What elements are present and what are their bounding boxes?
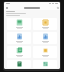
button[interactable]	[33, 32, 57, 44]
button[interactable]	[7, 46, 31, 58]
button[interactable]	[7, 32, 31, 44]
button[interactable]	[33, 18, 57, 30]
button[interactable]	[33, 60, 57, 68]
button[interactable]	[24, 7, 40, 9]
button[interactable]: Search	[55, 5, 60, 10]
button[interactable]	[7, 60, 31, 68]
button[interactable]	[33, 46, 57, 58]
button[interactable]	[7, 18, 31, 30]
button[interactable]: Navigation menu	[4, 5, 9, 10]
